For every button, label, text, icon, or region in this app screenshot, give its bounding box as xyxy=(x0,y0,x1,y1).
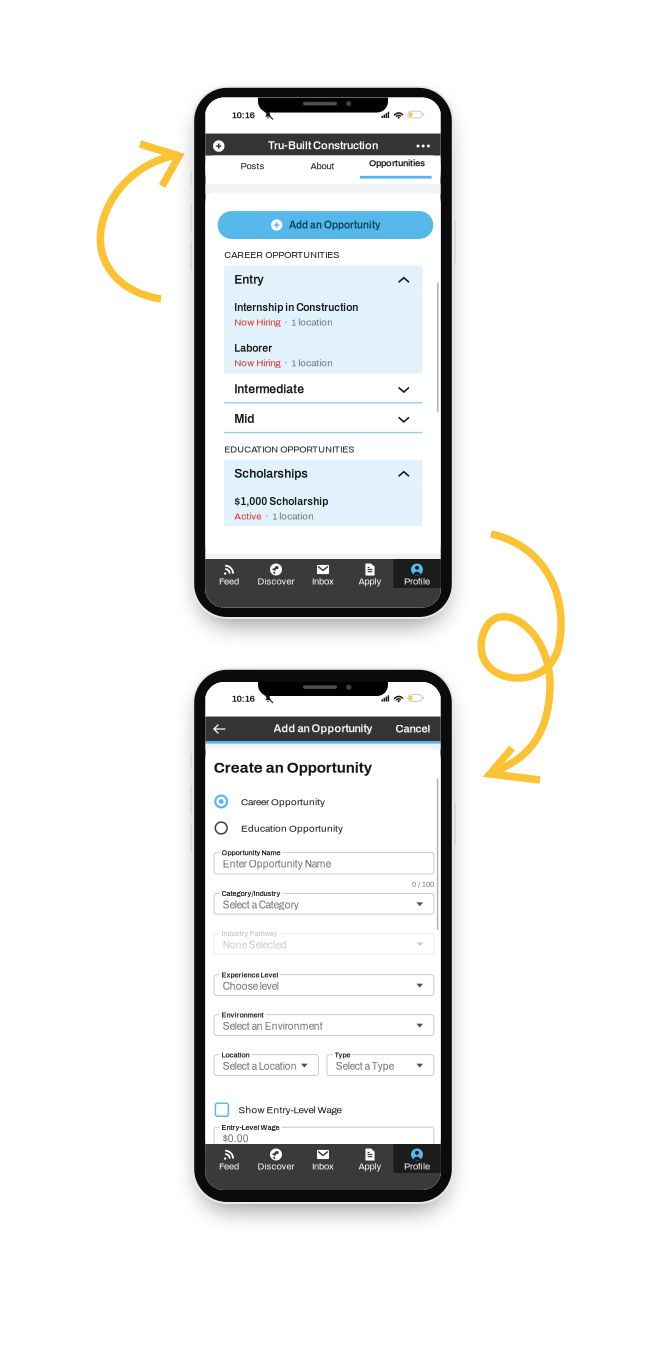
staticText: Discover xyxy=(257,576,294,586)
staticText: 10:16 xyxy=(231,110,254,120)
staticText: 10:16 xyxy=(231,693,254,704)
button[interactable]: Back xyxy=(213,724,226,734)
button[interactable]: Show Entry-Level Wage xyxy=(214,1102,434,1117)
staticText: Posts xyxy=(240,161,264,171)
button[interactable]: Apply xyxy=(346,559,393,588)
staticText: EDUCATION OPPORTUNITIES xyxy=(224,444,354,454)
staticText: Career Opportunity xyxy=(241,796,325,807)
button[interactable]: None Selected xyxy=(214,933,434,954)
button[interactable]: $0.00 xyxy=(214,1127,434,1148)
staticText: $1,000 Scholarship xyxy=(234,496,328,507)
button[interactable]: Enter Opportunity Name xyxy=(214,852,434,874)
button[interactable]: More options xyxy=(416,141,429,151)
staticText: Show Entry-Level Wage xyxy=(238,1104,341,1115)
button[interactable]: Intermediate xyxy=(224,375,422,403)
button[interactable]: Cancel xyxy=(395,723,430,735)
button[interactable]: Add an Opportunity xyxy=(218,211,433,239)
button[interactable]: Discover xyxy=(252,559,299,588)
button[interactable]: Inbox xyxy=(299,1144,346,1173)
staticText: Laborer xyxy=(234,343,272,354)
staticText: · 1 location xyxy=(280,317,332,327)
staticText: Environment xyxy=(222,1011,264,1019)
staticText: Add an Opportunity xyxy=(273,722,372,734)
staticText: Discover xyxy=(257,1161,294,1171)
staticText: Now Hiring xyxy=(234,317,280,327)
staticText: Now Hiring xyxy=(234,358,280,368)
button[interactable]: Add xyxy=(213,140,224,152)
staticText: Inbox xyxy=(312,1161,334,1171)
staticText: Apply xyxy=(358,576,381,586)
button[interactable]: Laborer xyxy=(224,334,422,374)
staticText: Tru-Built Construction xyxy=(268,139,378,151)
staticText: Choose level xyxy=(223,981,279,992)
button[interactable]: Inbox xyxy=(299,559,346,588)
staticText: Industry Pathway xyxy=(222,930,278,937)
staticText: Apply xyxy=(358,1161,381,1171)
staticText: Active xyxy=(234,511,261,521)
staticText: Opportunities xyxy=(369,158,425,168)
staticText: Feed xyxy=(219,576,239,586)
staticText: None Selected xyxy=(223,940,287,950)
button[interactable]: Select an Environment xyxy=(214,1015,434,1035)
staticText: Scholarships xyxy=(234,467,308,480)
button[interactable]: Scholarships xyxy=(224,460,422,487)
staticText: Experience Level xyxy=(222,971,279,979)
button[interactable]: Profile xyxy=(393,1144,440,1173)
staticText: Profile xyxy=(404,1161,430,1171)
staticText: Type xyxy=(335,1051,351,1059)
button[interactable]: Entry xyxy=(224,266,422,293)
staticText: · 1 location xyxy=(280,358,332,368)
staticText: Profile xyxy=(404,576,430,586)
staticText: Opportunity Name xyxy=(222,849,281,857)
staticText: Select an Environment xyxy=(223,1021,323,1032)
staticText: Enter Opportunity Name xyxy=(223,859,331,870)
staticText: Entry xyxy=(234,273,263,286)
staticText: 0 / 100 xyxy=(412,880,434,888)
button[interactable]: $1,000 Scholarship xyxy=(224,487,422,526)
staticText: Cancel xyxy=(395,723,430,735)
button[interactable]: Profile xyxy=(393,559,440,588)
button[interactable]: Internship in Construction xyxy=(224,293,422,334)
button[interactable]: Select a Location xyxy=(214,1055,318,1075)
staticText: CAREER OPPORTUNITIES xyxy=(224,250,339,260)
staticText: · 1 location xyxy=(261,511,313,521)
button[interactable]: About xyxy=(287,158,357,174)
staticText: Internship in Construction xyxy=(234,302,358,313)
staticText: Entry-Level Wage xyxy=(222,1124,280,1131)
button[interactable]: Select a Type xyxy=(327,1055,434,1075)
staticText: Mid xyxy=(234,412,254,425)
button[interactable]: Select a Category xyxy=(214,893,434,914)
staticText: Select a Category xyxy=(223,900,299,910)
button[interactable]: Feed xyxy=(205,559,252,588)
staticText: Inbox xyxy=(312,576,334,586)
staticText: Select a Type xyxy=(336,1061,394,1072)
staticText: Location xyxy=(222,1051,250,1059)
staticText: Education Opportunity xyxy=(241,823,343,834)
button[interactable]: Choose level xyxy=(214,975,434,995)
staticText: About xyxy=(310,161,334,171)
staticText: Category/Industry xyxy=(222,890,281,897)
staticText: Add an Opportunity xyxy=(289,219,380,230)
staticText: Select a Location xyxy=(223,1061,297,1072)
staticText: Feed xyxy=(219,1161,239,1171)
button[interactable]: Education Opportunity xyxy=(214,821,434,835)
button[interactable]: Opportunities xyxy=(359,158,434,180)
button[interactable]: Career Opportunity xyxy=(214,794,434,808)
button[interactable]: Feed xyxy=(205,1144,252,1173)
button[interactable]: Mid xyxy=(224,405,422,433)
button[interactable]: Apply xyxy=(346,1144,393,1173)
button[interactable]: Discover xyxy=(252,1144,299,1173)
button[interactable]: Posts xyxy=(217,158,287,174)
staticText: $0.00 xyxy=(223,1133,249,1144)
staticText: Create an Opportunity xyxy=(214,760,372,776)
staticText: Intermediate xyxy=(234,382,304,396)
